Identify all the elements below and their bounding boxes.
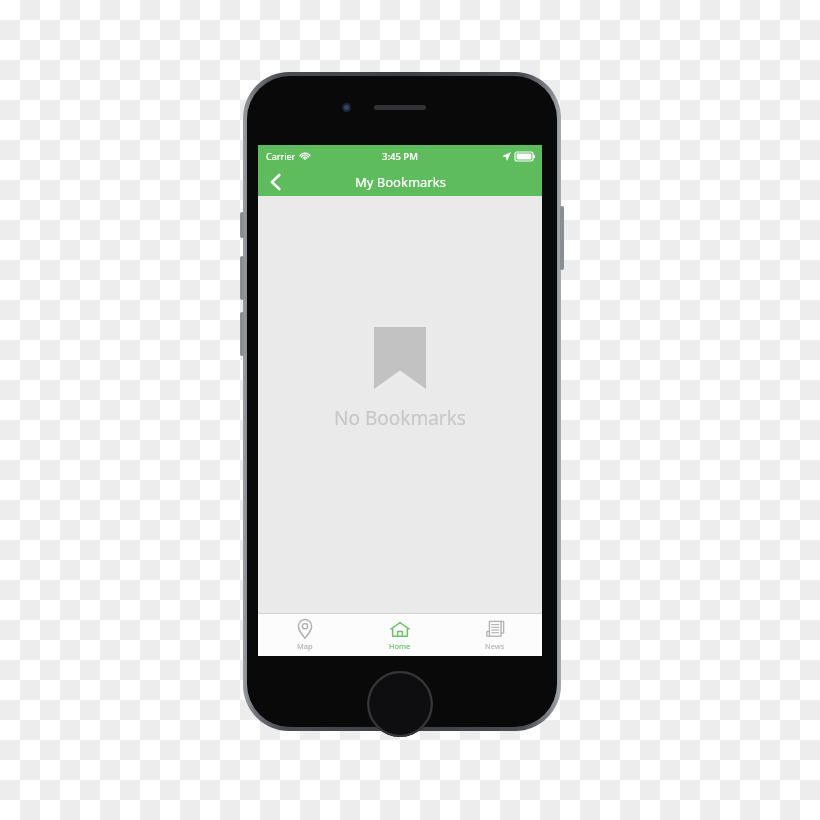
button[interactable]: News	[447, 614, 542, 656]
button[interactable]: Home	[352, 614, 447, 656]
staticText: News	[485, 641, 505, 651]
button[interactable]: Back	[258, 167, 292, 196]
staticText: My Bookmarks	[355, 173, 446, 191]
staticText: 3:45 PM	[382, 150, 418, 163]
staticText: Map	[297, 641, 313, 651]
staticText: Carrier	[266, 150, 296, 162]
staticText: No Bookmarks	[334, 405, 466, 431]
staticText: Home	[389, 641, 411, 651]
button[interactable]: Map	[258, 614, 352, 656]
